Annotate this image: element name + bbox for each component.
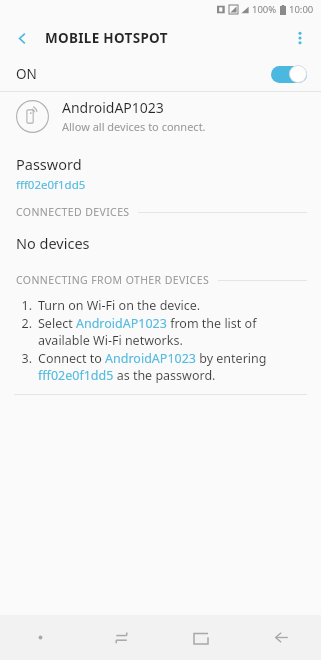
staticText: Turn on Wi-Fi on the device. [38,297,201,314]
staticText: 1. [14,297,32,314]
staticText: 10:00 [289,3,314,16]
button[interactable]: Password [0,152,321,195]
staticText: CONNECTED DEVICES [16,205,130,219]
staticText: CONNECTING FROM OTHER DEVICES [16,273,210,287]
staticText: 3. [14,350,32,367]
staticText: MOBILE HOTSPOT [45,29,168,47]
staticText: Connect to AndroidAP1023 by entering fff… [38,350,307,384]
button[interactable]: Back [241,615,321,660]
button[interactable]: Indicator [0,615,81,660]
button[interactable]: Home [161,615,241,660]
button[interactable]: More options [283,21,317,55]
button[interactable]: Back [5,21,39,55]
staticText: ON [16,65,37,83]
staticText: AndroidAP1023 [62,98,164,117]
staticText: 100% [252,3,277,16]
staticText: 2. [14,315,32,332]
staticText: No devices [16,233,90,253]
staticText: Select AndroidAP1023 from the list of av… [38,315,307,349]
staticText: fff02e0f1dd5 [16,177,86,193]
button[interactable]: AndroidAP1023 [0,92,321,140]
button[interactable]: Recent apps [81,615,161,660]
staticText: Allow all devices to connect. [62,119,206,134]
button[interactable]: ON [0,56,321,91]
staticText: Password [16,154,82,174]
